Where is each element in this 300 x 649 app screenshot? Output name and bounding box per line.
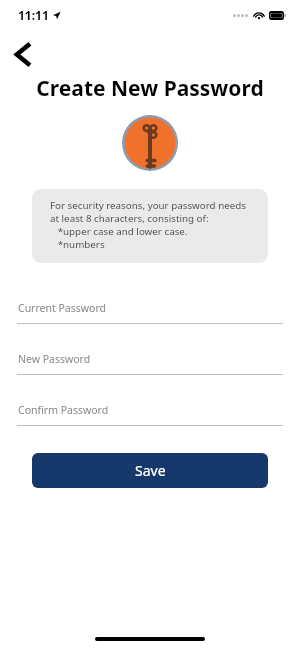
staticText: at least 8 characters, consisting of: bbox=[50, 212, 209, 225]
staticText: *upper case and lower case. bbox=[50, 225, 188, 238]
staticText: For security reasons, your password need… bbox=[50, 199, 246, 212]
staticText: New Password bbox=[18, 352, 91, 366]
button[interactable]: New Password bbox=[17, 352, 283, 375]
staticText: Create New Password bbox=[0, 74, 300, 103]
button[interactable]: Back bbox=[4, 36, 40, 72]
staticText: *numbers bbox=[50, 238, 105, 251]
staticText: Confirm Password bbox=[18, 403, 109, 417]
staticText: Current Password bbox=[18, 301, 107, 315]
staticText: Save bbox=[135, 461, 166, 480]
button[interactable]: Confirm Password bbox=[17, 403, 283, 426]
button[interactable]: Save bbox=[32, 453, 268, 488]
staticText: 11:11 bbox=[18, 7, 49, 23]
button[interactable]: Current Password bbox=[17, 301, 283, 324]
